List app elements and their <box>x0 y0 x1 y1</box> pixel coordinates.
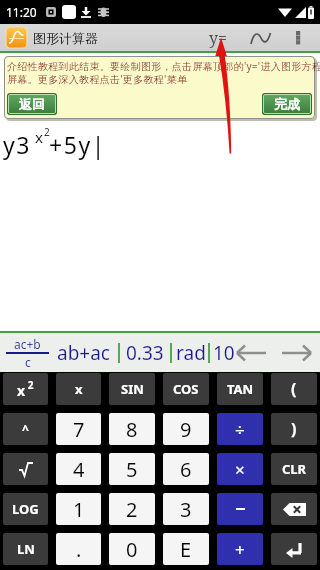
staticText: E <box>180 536 192 563</box>
button[interactable]: ) <box>271 413 317 445</box>
staticText: 完成 <box>274 96 300 112</box>
button[interactable]: 6 <box>163 453 209 485</box>
staticText: 介绍性教程到此结束。要绘制图形，点击屏幕顶部的'y='进入图形方程 屏幕。更多深… <box>7 59 320 86</box>
staticText: 2 <box>126 496 138 523</box>
staticText: ac+b <box>14 336 41 352</box>
staticText: ÷ <box>235 418 245 441</box>
staticText: 6 <box>180 456 192 483</box>
staticText: 7 <box>73 416 85 443</box>
staticText: TAN <box>227 380 254 398</box>
button[interactable]: x 2 <box>3 373 48 405</box>
button[interactable]: COS <box>163 373 209 405</box>
staticText: LOG <box>12 500 39 518</box>
button[interactable]: LOG <box>3 493 48 525</box>
staticText: 4 <box>73 456 85 483</box>
button[interactable]: ( <box>271 373 317 405</box>
staticText: . <box>76 536 82 563</box>
button[interactable]: 0 <box>109 533 155 565</box>
staticText: 1 <box>73 496 85 523</box>
staticText: + <box>235 538 245 561</box>
button[interactable] <box>271 493 317 525</box>
button[interactable]: LN <box>3 533 48 565</box>
button[interactable] <box>249 24 273 51</box>
button[interactable]: 5 <box>109 453 155 485</box>
button[interactable]: 4 <box>56 453 101 485</box>
button[interactable] <box>217 493 263 525</box>
button[interactable]: 0.33 <box>126 340 164 366</box>
staticText: × <box>235 458 245 481</box>
button[interactable]: CLR <box>271 453 317 485</box>
button[interactable]: y= <box>203 24 233 51</box>
staticText: x <box>75 380 83 398</box>
staticText: x 2 <box>17 378 34 400</box>
button[interactable]: 9 <box>163 413 209 445</box>
button[interactable]: 7 <box>56 413 101 445</box>
button[interactable]: ^ <box>3 413 48 445</box>
button[interactable]: 8 <box>109 413 155 445</box>
button[interactable]: × <box>217 453 263 485</box>
button[interactable]: 10 <box>213 340 235 366</box>
staticText: 返回 <box>19 96 45 112</box>
button[interactable]: 完成 <box>263 94 311 114</box>
staticText: 3 <box>180 496 192 523</box>
staticText: ^ <box>22 421 29 437</box>
staticText: 5 <box>126 456 138 483</box>
staticText: COS <box>173 380 199 398</box>
staticText: ( <box>291 378 297 400</box>
staticText: y= <box>209 27 227 49</box>
staticText: ) <box>291 418 297 440</box>
button[interactable]: . <box>56 533 101 565</box>
staticText: 0 <box>126 536 138 563</box>
staticText: 11:20 <box>6 4 37 20</box>
button[interactable]: + <box>217 533 263 565</box>
button[interactable] <box>288 24 308 51</box>
button[interactable]: 返回 <box>8 94 56 114</box>
button[interactable] <box>3 453 48 485</box>
staticText: +5y| <box>49 129 107 160</box>
button[interactable]: SIN <box>109 373 155 405</box>
staticText: y3 <box>3 129 32 160</box>
button[interactable]: x <box>56 373 101 405</box>
staticText: 图形计算器 <box>33 30 98 46</box>
button[interactable]: 1 <box>56 493 101 525</box>
button[interactable]: ab+ac <box>57 340 110 366</box>
staticText: 9 <box>180 416 192 443</box>
button[interactable]: ac+b <box>6 336 49 370</box>
staticText: SIN <box>121 380 144 398</box>
staticText: 8 <box>126 416 138 443</box>
button[interactable]: rad <box>176 340 206 366</box>
button[interactable]: 3 <box>163 493 209 525</box>
button[interactable]: E <box>163 533 209 565</box>
staticText: CLR <box>282 460 307 478</box>
button[interactable]: 2 <box>109 493 155 525</box>
staticText: c <box>25 354 31 370</box>
button[interactable]: ÷ <box>217 413 263 445</box>
button[interactable]: TAN <box>217 373 263 405</box>
staticText: x <box>35 127 43 147</box>
button[interactable] <box>236 344 267 362</box>
staticText: LN <box>17 540 35 558</box>
button[interactable] <box>271 533 317 565</box>
staticText: 2 <box>44 125 50 139</box>
button[interactable] <box>281 344 312 362</box>
